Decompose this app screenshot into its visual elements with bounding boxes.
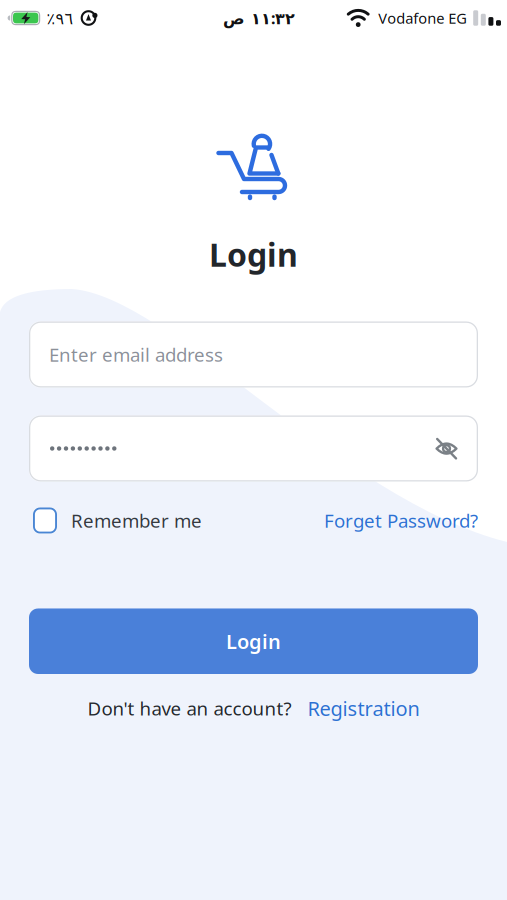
- staticText: Remember me: [71, 508, 202, 533]
- staticText: Login: [209, 233, 298, 275]
- staticText: Don't have an account?: [87, 696, 291, 721]
- button[interactable]: Remember me: [33, 507, 202, 533]
- staticText: Vodafone EG: [378, 8, 467, 28]
- button[interactable]: Registration: [307, 695, 419, 722]
- button[interactable]: [29, 415, 478, 481]
- button[interactable]: Forget Password?: [324, 508, 478, 533]
- button[interactable]: Login: [29, 608, 478, 674]
- button[interactable]: Show password: [435, 438, 458, 459]
- staticText: ‏١١:٣٢ ص: [222, 7, 294, 29]
- staticText: Login: [226, 628, 281, 655]
- staticText: Enter email address: [49, 342, 223, 367]
- staticText: Registration: [307, 695, 419, 722]
- staticText: Forget Password?: [324, 508, 478, 533]
- button[interactable]: Enter email address: [29, 321, 478, 387]
- staticText: ‏٩٦٪: [46, 7, 73, 29]
